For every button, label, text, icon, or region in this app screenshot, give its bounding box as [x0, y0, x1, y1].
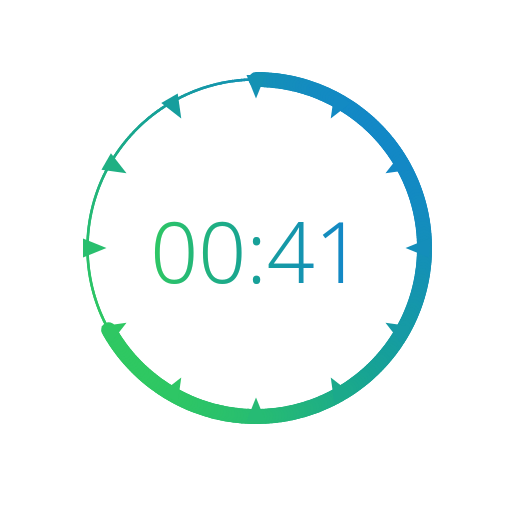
- button[interactable]: Timer, 00:41 remaining: [0, 0, 512, 512]
- staticText: 00:41: [150, 193, 363, 307]
